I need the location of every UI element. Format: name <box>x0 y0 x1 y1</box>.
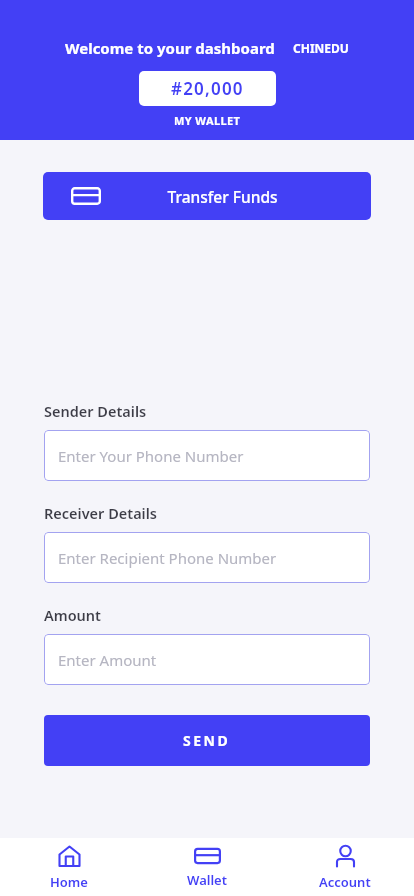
staticText: Enter Amount <box>58 650 157 670</box>
staticText: Account <box>319 873 371 890</box>
staticText: CHINEDU <box>293 40 349 56</box>
staticText: Enter Recipient Phone Number <box>58 548 277 568</box>
button[interactable]: Enter Your Phone Number <box>44 430 370 481</box>
staticText: Wallet <box>187 871 227 889</box>
button[interactable]: Home <box>0 838 138 896</box>
staticText: Transfer Funds <box>167 186 278 207</box>
button[interactable]: Enter Recipient Phone Number <box>44 532 370 583</box>
button[interactable]: SEND <box>44 715 370 766</box>
button[interactable]: Account <box>276 838 414 896</box>
staticText: #20,000 <box>171 77 244 100</box>
staticText: Enter Your Phone Number <box>58 446 244 466</box>
staticText: Sender Details <box>44 401 147 421</box>
staticText: Receiver Details <box>44 503 157 523</box>
button[interactable]: Wallet <box>138 839 276 895</box>
button[interactable]: Transfer Funds <box>43 172 371 220</box>
button[interactable]: Enter Amount <box>44 634 370 685</box>
staticText: Welcome to your dashboard <box>65 38 275 58</box>
staticText: Amount <box>44 605 101 625</box>
staticText: Home <box>50 873 88 890</box>
staticText: MY WALLET <box>174 113 241 128</box>
staticText: SEND <box>183 731 231 750</box>
button[interactable]: #20,000 <box>139 71 276 106</box>
